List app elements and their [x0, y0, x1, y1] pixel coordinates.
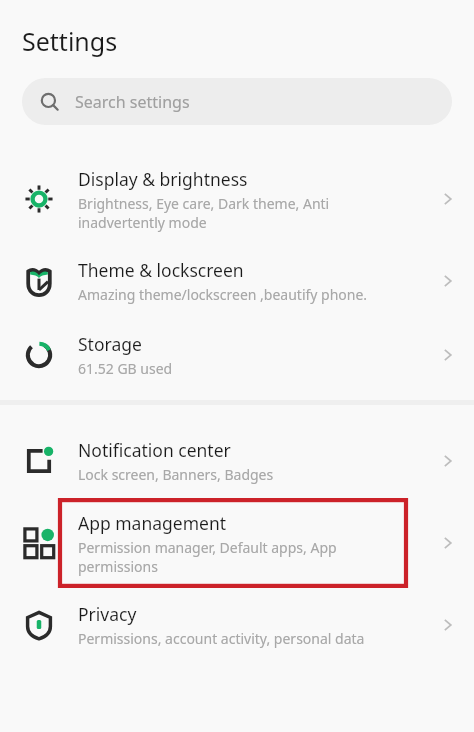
staticText: Storage [78, 332, 142, 356]
staticText: Display & brightness [78, 167, 248, 191]
staticText: App management [78, 511, 227, 535]
staticText: Theme & lockscreen [78, 258, 244, 282]
staticText: Amazing theme/lockscreen ,beautify phone… [78, 285, 368, 304]
staticText: Search settings [75, 91, 190, 113]
staticText: Permissions, account activity, personal … [78, 629, 365, 648]
staticText: 61.52 GB used [78, 359, 173, 378]
button[interactable]: Notification center [0, 424, 474, 498]
staticText: Settings [22, 24, 118, 58]
button[interactable]: Theme & lockscreen [0, 244, 474, 318]
staticText: Privacy [78, 602, 137, 626]
staticText: Permission manager, Default apps, App pe… [78, 538, 337, 576]
staticText: Lock screen, Banners, Badges [78, 465, 274, 484]
button[interactable]: App management [0, 498, 474, 588]
button[interactable]: Privacy [0, 588, 474, 662]
button[interactable]: Search settings [22, 78, 452, 125]
button[interactable]: Storage [0, 318, 474, 392]
staticText: Brightness, Eye care, Dark theme, Anti i… [78, 194, 330, 232]
staticText: Notification center [78, 438, 231, 462]
button[interactable]: Display & brightness [0, 154, 474, 244]
